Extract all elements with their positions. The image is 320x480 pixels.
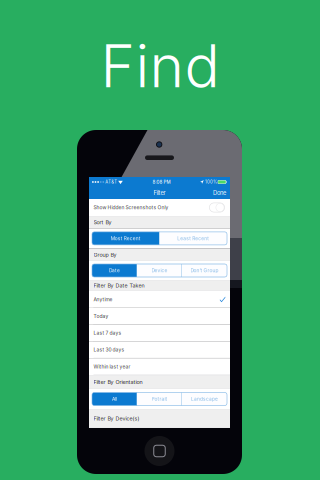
staticText: Date bbox=[109, 268, 120, 273]
staticText: Within last year bbox=[93, 364, 130, 370]
staticText: 100% bbox=[204, 179, 218, 185]
staticText: Find bbox=[100, 30, 219, 101]
button[interactable]: Device bbox=[137, 264, 182, 277]
button[interactable]: All bbox=[92, 392, 137, 405]
staticText: Done bbox=[213, 189, 226, 196]
staticText: Most Recent bbox=[111, 235, 141, 241]
staticText: Device bbox=[151, 268, 167, 273]
button[interactable]: Potrait bbox=[137, 392, 182, 405]
staticText: Filter bbox=[153, 189, 165, 196]
staticText: Filter By Orientation bbox=[93, 379, 142, 385]
button[interactable]: Last 30 days bbox=[89, 341, 230, 358]
button[interactable]: Most Recent bbox=[92, 232, 159, 245]
staticText: Potrait bbox=[151, 396, 167, 402]
staticText: AT&T bbox=[104, 179, 118, 185]
button[interactable]: Last 7 days bbox=[89, 325, 230, 341]
staticText: Filter By Date Taken bbox=[93, 282, 144, 289]
staticText: Least Recent bbox=[177, 235, 209, 241]
button[interactable]: Landscape bbox=[182, 392, 227, 405]
staticText: Show Hidden Screenshots Only bbox=[93, 204, 168, 210]
staticText: Last 7 days bbox=[93, 330, 121, 336]
staticText: Today bbox=[93, 313, 108, 319]
button[interactable]: Date bbox=[92, 264, 137, 277]
staticText: Anytime bbox=[93, 296, 112, 302]
button[interactable]: Least Recent bbox=[159, 232, 227, 245]
staticText: Don't Group bbox=[190, 268, 218, 273]
staticText: Sort By bbox=[93, 219, 111, 225]
button[interactable]: Anytime bbox=[89, 291, 230, 308]
staticText: Last 30 days bbox=[93, 347, 124, 353]
button[interactable]: Within last year bbox=[89, 358, 230, 375]
staticText: Filter By Device(s) bbox=[93, 415, 139, 422]
button[interactable]: Show Hidden Screenshots Only bbox=[89, 199, 230, 216]
staticText: 8:08 PM bbox=[152, 179, 170, 185]
staticText: Group By bbox=[93, 251, 116, 258]
staticText: Landscape bbox=[191, 396, 218, 402]
staticText: All bbox=[112, 396, 117, 402]
button[interactable]: Today bbox=[89, 308, 230, 325]
button[interactable]: Don't Group bbox=[182, 264, 227, 277]
button[interactable]: Done bbox=[208, 187, 230, 199]
